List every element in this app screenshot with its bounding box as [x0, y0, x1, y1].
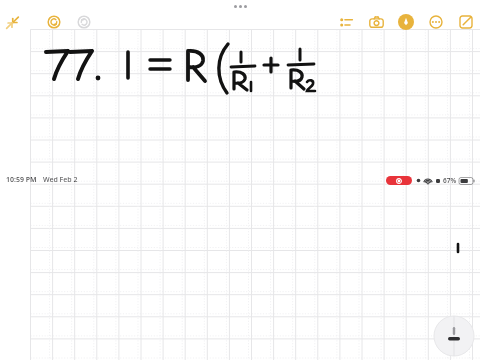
button[interactable]: Pen tool [395, 11, 417, 33]
button[interactable]: Redo [73, 11, 95, 33]
button[interactable]: Outline [335, 11, 357, 33]
staticText: 67% [443, 176, 457, 185]
button[interactable]: Undo [43, 11, 65, 33]
staticText: Wed Feb 2 [43, 175, 78, 185]
staticText: 10:59 PM [6, 175, 37, 185]
button[interactable]: Collapse toolbar [1, 11, 23, 33]
button[interactable]: Insert photo [365, 11, 387, 33]
other: Recording [386, 176, 412, 185]
button[interactable]: More tools [425, 11, 447, 33]
button[interactable]: Window controls [223, 3, 258, 10]
button[interactable]: Page navigator [432, 314, 476, 358]
button[interactable]: New note [455, 11, 477, 33]
